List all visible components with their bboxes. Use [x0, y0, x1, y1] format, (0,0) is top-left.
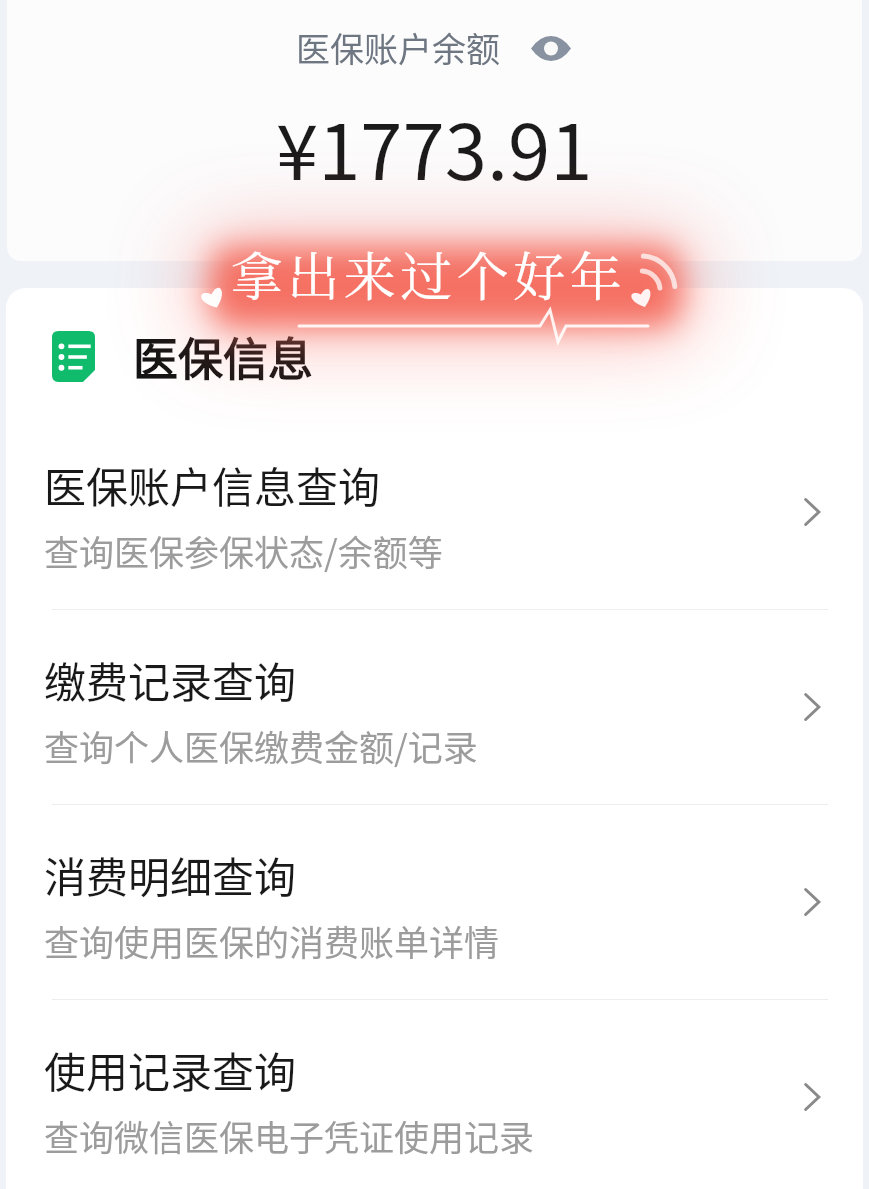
staticText: 查询微信医保电子凭证使用记录: [44, 1110, 535, 1161]
staticText: 消费明细查询: [44, 844, 297, 905]
staticText: 拿出来过个好年: [0, 236, 863, 311]
button[interactable]: 使用记录查询: [6, 1035, 863, 1189]
staticText: 缴费记录查询: [44, 649, 297, 710]
staticText: 医保信息: [133, 324, 314, 389]
button[interactable]: Toggle balance visibility: [528, 32, 574, 64]
staticText: 查询医保参保状态/余额等: [44, 525, 443, 576]
button[interactable]: 消费明细查询: [6, 840, 863, 999]
staticText: 查询使用医保的消费账单详情: [44, 915, 500, 966]
staticText: 使用记录查询: [44, 1039, 297, 1100]
staticText: ¥1773.91: [276, 92, 593, 202]
staticText: 查询个人医保缴费金额/记录: [44, 720, 478, 771]
button[interactable]: 医保账户信息查询: [6, 450, 863, 609]
staticText: 医保账户余额: [296, 23, 500, 72]
button[interactable]: 缴费记录查询: [6, 645, 863, 804]
staticText: 医保账户信息查询: [44, 454, 381, 515]
